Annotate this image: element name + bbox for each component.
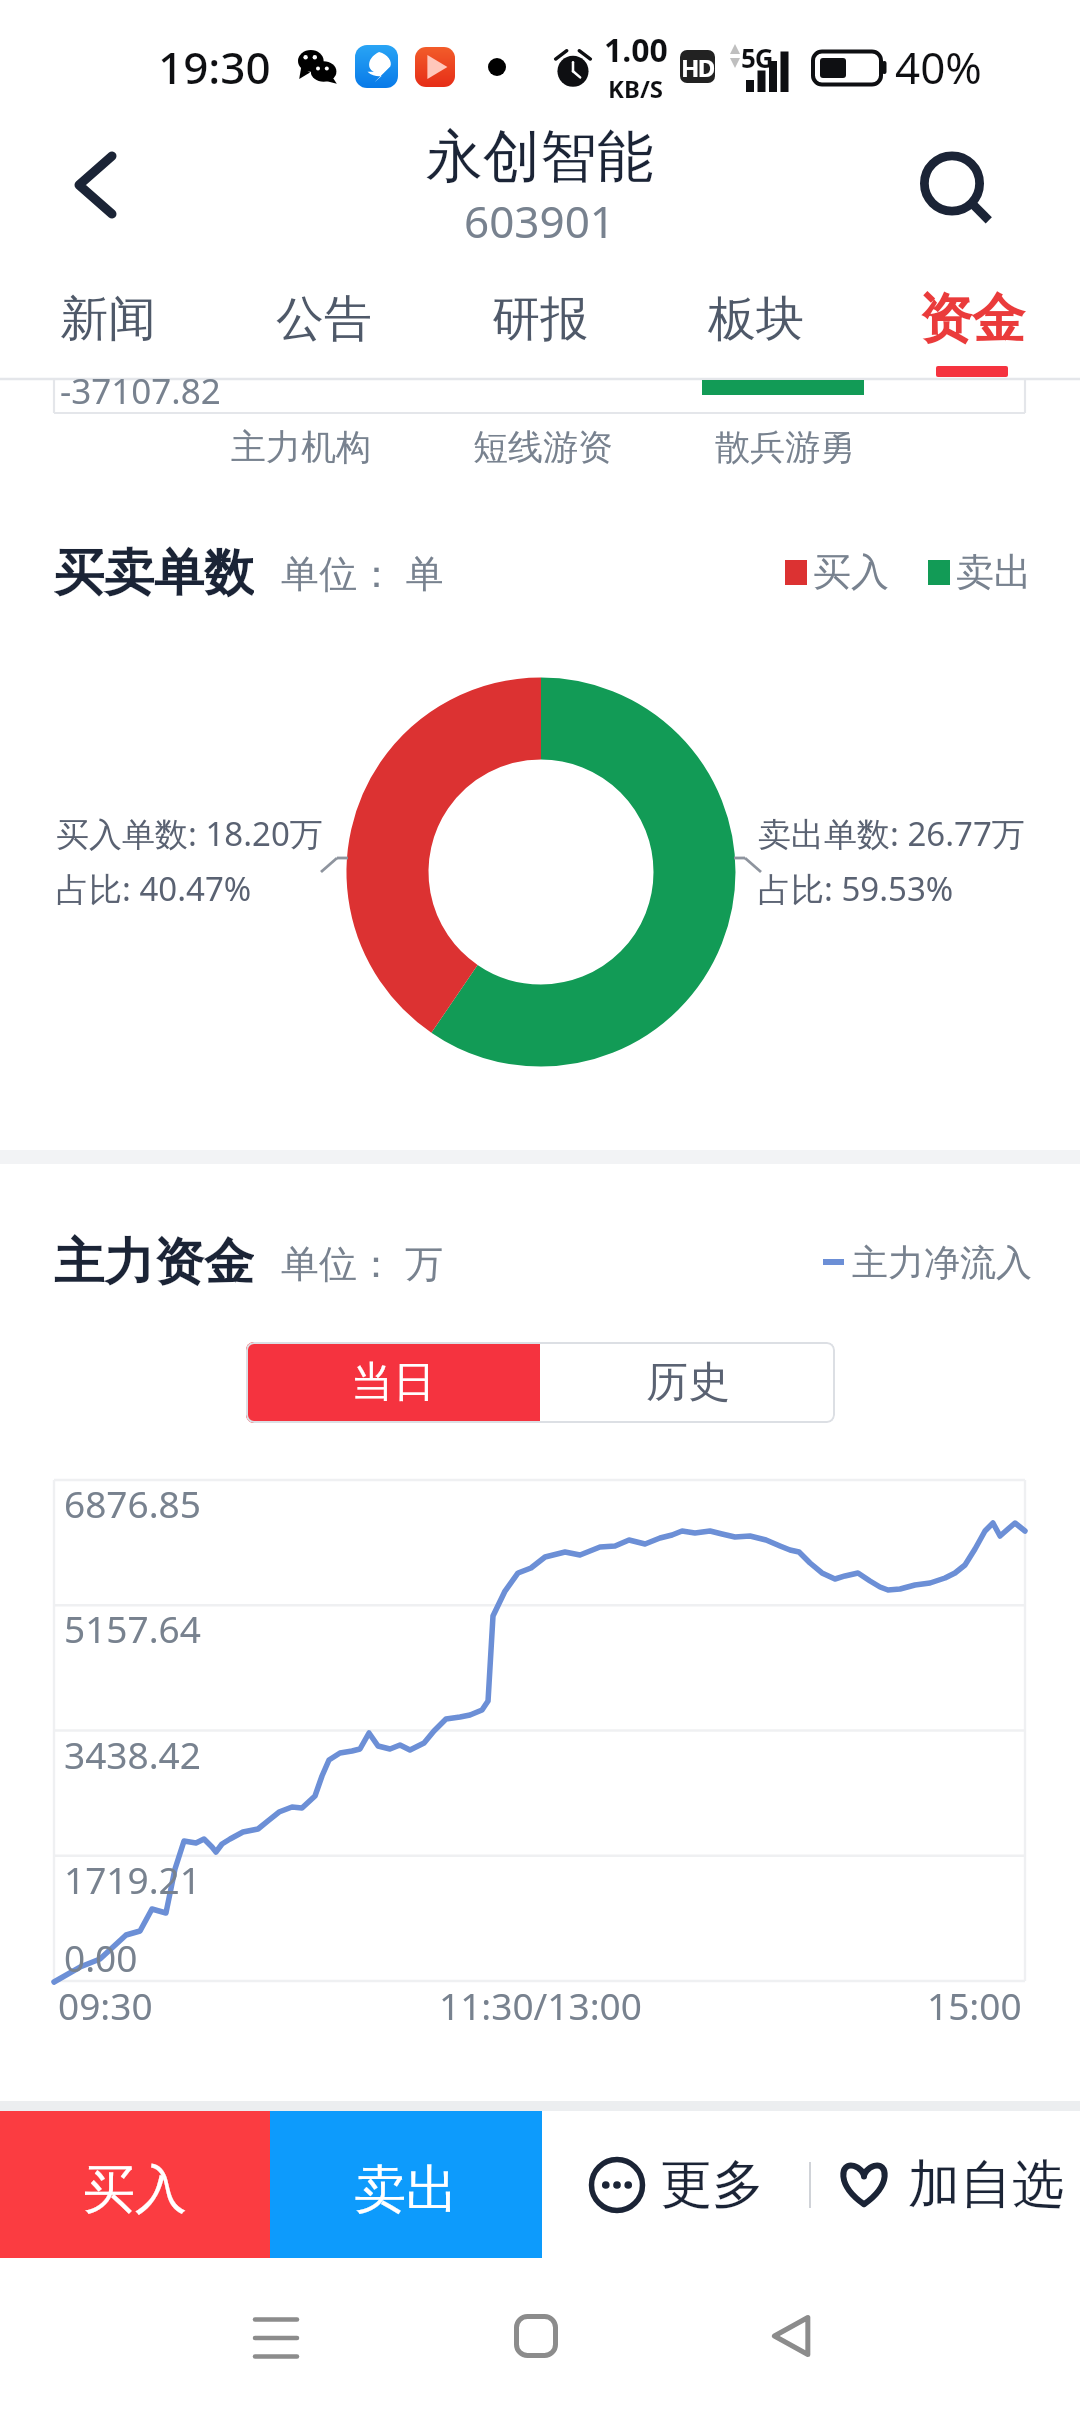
staticText: 历史 bbox=[646, 1356, 730, 1409]
staticText: 主力资金 bbox=[54, 1231, 254, 1293]
button[interactable]: 历史 bbox=[540, 1342, 835, 1423]
staticText: 买入 bbox=[813, 548, 889, 596]
button[interactable]: 加自选 bbox=[834, 2152, 1064, 2218]
staticText: 买卖单数 bbox=[54, 542, 254, 602]
button[interactable]: Back bbox=[756, 2300, 828, 2372]
button[interactable]: 板块 bbox=[648, 262, 864, 378]
staticText: 5G bbox=[741, 40, 773, 75]
staticText: 短线游资 bbox=[473, 425, 613, 469]
button[interactable]: 更多 bbox=[588, 2152, 764, 2218]
button[interactable]: Search bbox=[898, 119, 1006, 227]
button[interactable]: 买入 bbox=[0, 2111, 270, 2258]
staticText: 11:30/13:00 bbox=[439, 1980, 642, 2030]
staticText: 0.00 bbox=[64, 1932, 138, 1982]
button[interactable]: Home bbox=[500, 2300, 572, 2372]
staticText: HD bbox=[681, 51, 714, 83]
staticText: 15:00 bbox=[927, 1980, 1022, 2030]
staticText: 资金 bbox=[919, 286, 1025, 353]
button[interactable]: 公告 bbox=[216, 262, 432, 378]
staticText: 占比: 59.53% bbox=[758, 866, 954, 911]
button[interactable]: 当日 bbox=[246, 1342, 540, 1423]
staticText: 研报 bbox=[492, 289, 588, 349]
staticText: 当日 bbox=[351, 1356, 435, 1409]
staticText: 5157.64 bbox=[64, 1603, 201, 1653]
staticText: 卖出单数: 26.77万 bbox=[758, 811, 1025, 856]
staticText: 买入单数: 18.20万 bbox=[56, 811, 323, 856]
button[interactable]: 资金 bbox=[864, 262, 1080, 378]
staticText: 单位： 单 bbox=[281, 546, 444, 598]
staticText: KB/S bbox=[608, 72, 664, 105]
staticText: 主力净流入 bbox=[852, 1240, 1032, 1285]
staticText: 主力机构 bbox=[231, 425, 371, 469]
button[interactable]: 卖出 bbox=[270, 2111, 542, 2258]
staticText: 3438.42 bbox=[64, 1729, 201, 1779]
staticText: 板块 bbox=[708, 289, 804, 349]
button[interactable]: Recent apps bbox=[240, 2302, 312, 2374]
staticText: 19:30 bbox=[158, 37, 271, 97]
staticText: 1719.21 bbox=[64, 1854, 201, 1904]
button[interactable]: 新闻 bbox=[0, 262, 216, 378]
staticText: 新闻 bbox=[60, 289, 156, 349]
staticText: 卖出 bbox=[956, 548, 1032, 596]
staticText: 加自选 bbox=[908, 2152, 1064, 2218]
staticText: 单位： 万 bbox=[281, 1236, 443, 1288]
staticText: 卖出 bbox=[354, 2157, 458, 2223]
staticText: 603901 bbox=[464, 191, 616, 251]
staticText: 占比: 40.47% bbox=[56, 866, 252, 911]
staticText: 更多 bbox=[660, 2152, 764, 2218]
staticText: 公告 bbox=[276, 289, 372, 349]
staticText: 09:30 bbox=[58, 1980, 153, 2030]
staticText: 40% bbox=[895, 37, 982, 97]
staticText: 永创智能 bbox=[426, 121, 654, 193]
staticText: 散兵游勇 bbox=[715, 425, 855, 469]
staticText: -37107.82 bbox=[60, 367, 221, 415]
button[interactable]: Back bbox=[55, 140, 135, 220]
staticText: 1.00 bbox=[604, 28, 668, 72]
staticText: 6876.85 bbox=[64, 1478, 201, 1528]
button[interactable]: 研报 bbox=[432, 262, 648, 378]
staticText: 买入 bbox=[83, 2157, 187, 2223]
